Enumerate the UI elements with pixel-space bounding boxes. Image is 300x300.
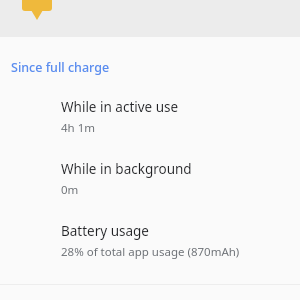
- button[interactable]: While in background: [0, 138, 300, 200]
- staticText: Battery usage: [61, 222, 149, 240]
- staticText: While in active use: [61, 98, 179, 116]
- other: App icon: [22, 0, 52, 20]
- staticText: While in background: [61, 160, 192, 178]
- staticText: 28% of total app usage (870mAh): [61, 244, 240, 260]
- button[interactable]: While in active use: [0, 82, 300, 138]
- staticText: 4h 1m: [61, 120, 96, 136]
- staticText: 0m: [61, 182, 79, 198]
- button[interactable]: Battery usage: [0, 200, 300, 262]
- staticText: Since full charge: [11, 59, 110, 76]
- button[interactable]: Since full charge: [0, 37, 300, 82]
